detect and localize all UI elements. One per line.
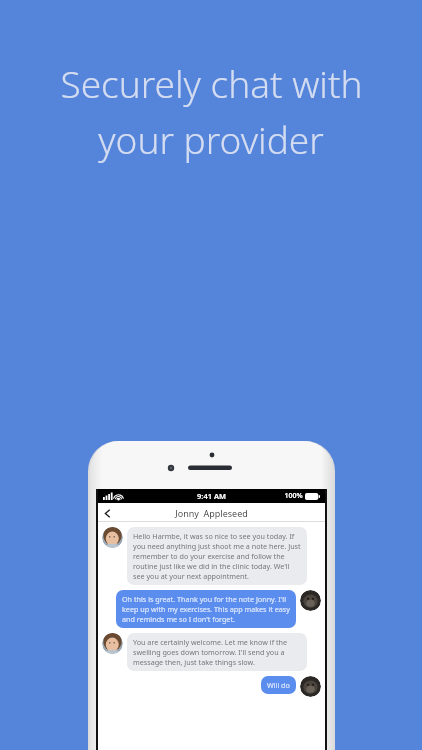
staticText: Oh this is great. Thank you for the note… — [122, 594, 290, 624]
staticText: Will do — [267, 680, 290, 690]
staticText: 9:41 AM — [197, 491, 226, 501]
other: Your avatar — [300, 590, 321, 611]
staticText: Jonny Appleseed — [175, 507, 248, 519]
button[interactable]: Provider avatar — [102, 633, 321, 671]
other: Provider avatar — [102, 633, 123, 654]
other: Provider avatar — [102, 527, 123, 548]
button[interactable]: Back — [98, 504, 116, 522]
staticText: your provider — [98, 114, 324, 164]
button[interactable]: Provider avatar — [102, 527, 321, 585]
staticText: 100% — [284, 491, 303, 501]
staticText: Hello Harmbe, it was so nice to see you … — [133, 531, 301, 581]
button[interactable]: Oh this is great. Thank you for the note… — [102, 590, 321, 628]
staticText: Securely chat with — [60, 58, 363, 108]
staticText: You are certainly welcome. Let me know i… — [133, 637, 301, 667]
other: Your avatar — [300, 676, 321, 697]
button[interactable]: Will do — [102, 676, 321, 697]
